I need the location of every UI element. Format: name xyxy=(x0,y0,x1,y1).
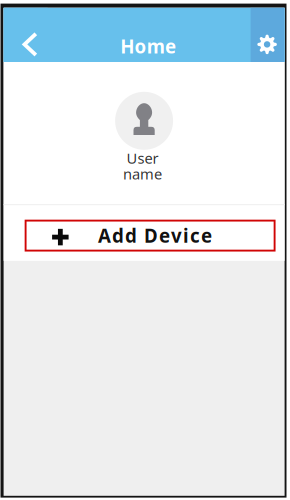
button[interactable]: Back xyxy=(4,8,48,62)
staticText: Add Device xyxy=(98,223,212,248)
staticText: User xyxy=(127,148,159,168)
staticText: Home xyxy=(120,34,176,59)
button[interactable]: Add Device xyxy=(26,221,275,251)
button[interactable]: Settings xyxy=(251,8,285,62)
staticText: name xyxy=(123,164,162,184)
